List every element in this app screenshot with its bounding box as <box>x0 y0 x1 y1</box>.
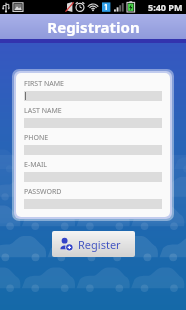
staticText: FIRST NAME <box>24 79 64 89</box>
button[interactable]: Register <box>52 231 135 257</box>
staticText: E-MAIL <box>24 160 48 170</box>
button[interactable] <box>24 91 162 101</box>
staticText: Registration <box>47 17 140 37</box>
staticText: LAST NAME <box>24 106 62 116</box>
staticText: 5:40 PM <box>148 1 183 13</box>
staticText: PASSWORD <box>24 187 62 197</box>
staticText: PHONE <box>24 133 49 143</box>
staticText: Register <box>78 237 121 252</box>
